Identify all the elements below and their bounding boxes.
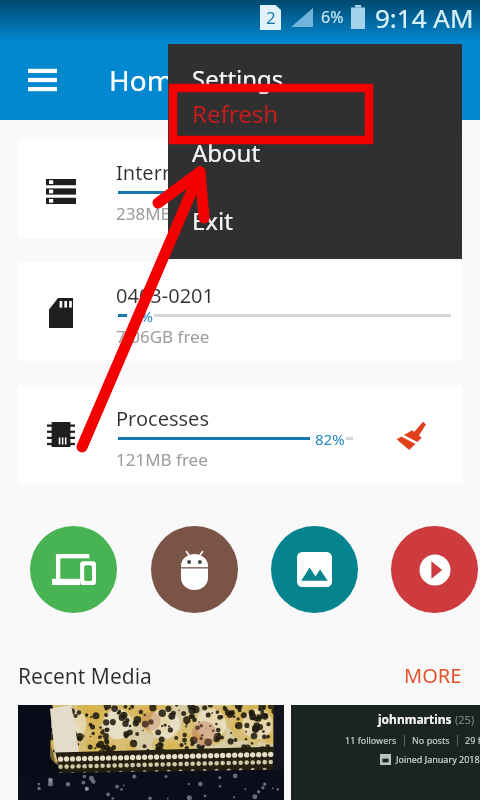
staticText: 0403-0201 — [116, 282, 214, 309]
button[interactable]: Videos — [391, 526, 478, 613]
staticText: Home — [109, 61, 189, 99]
button[interactable]: Open navigation drawer — [20, 62, 64, 98]
staticText: 238MB free — [116, 202, 208, 225]
staticText: Processes — [116, 405, 209, 432]
button[interactable]: Recent photo — [18, 705, 284, 800]
button[interactable]: Recent screenshot — [291, 705, 480, 800]
staticText: 9:14 AM — [375, 0, 474, 34]
staticText: 0% — [132, 306, 154, 326]
staticText: 82% — [315, 429, 345, 449]
button[interactable]: Processes — [18, 385, 463, 484]
staticText: johnmartins — [378, 711, 452, 727]
button[interactable]: Devices — [30, 526, 117, 613]
staticText: 2 — [266, 6, 276, 29]
staticText: 7.06GB free — [116, 325, 210, 348]
staticText: About — [192, 136, 261, 169]
staticText: No posts — [412, 734, 450, 746]
button[interactable]: 0403-0201 — [18, 262, 463, 361]
button[interactable]: Apps — [151, 526, 238, 613]
button[interactable]: Images — [271, 526, 358, 613]
staticText: Recent Media — [18, 662, 152, 691]
staticText: Internal — [116, 159, 191, 186]
staticText: MORE — [404, 662, 462, 689]
staticText: (25) — [455, 712, 475, 727]
staticText: Settings — [192, 62, 284, 95]
button[interactable]: About — [168, 135, 462, 169]
button[interactable]: Exit — [168, 203, 462, 237]
button[interactable]: Settings — [168, 61, 462, 95]
staticText: Exit — [192, 204, 233, 237]
staticText: Refresh — [192, 97, 279, 130]
button[interactable]: MORE — [404, 662, 462, 689]
staticText: 11 followers — [345, 734, 397, 746]
staticText: 6% — [321, 6, 344, 28]
button[interactable]: Internal — [18, 139, 463, 238]
button[interactable]: Recent Media — [18, 662, 152, 691]
staticText: 29 follo — [465, 734, 480, 746]
staticText: 121MB free — [116, 448, 208, 471]
staticText: Joined January 2018 — [396, 753, 480, 765]
button[interactable]: Refresh — [168, 96, 462, 130]
